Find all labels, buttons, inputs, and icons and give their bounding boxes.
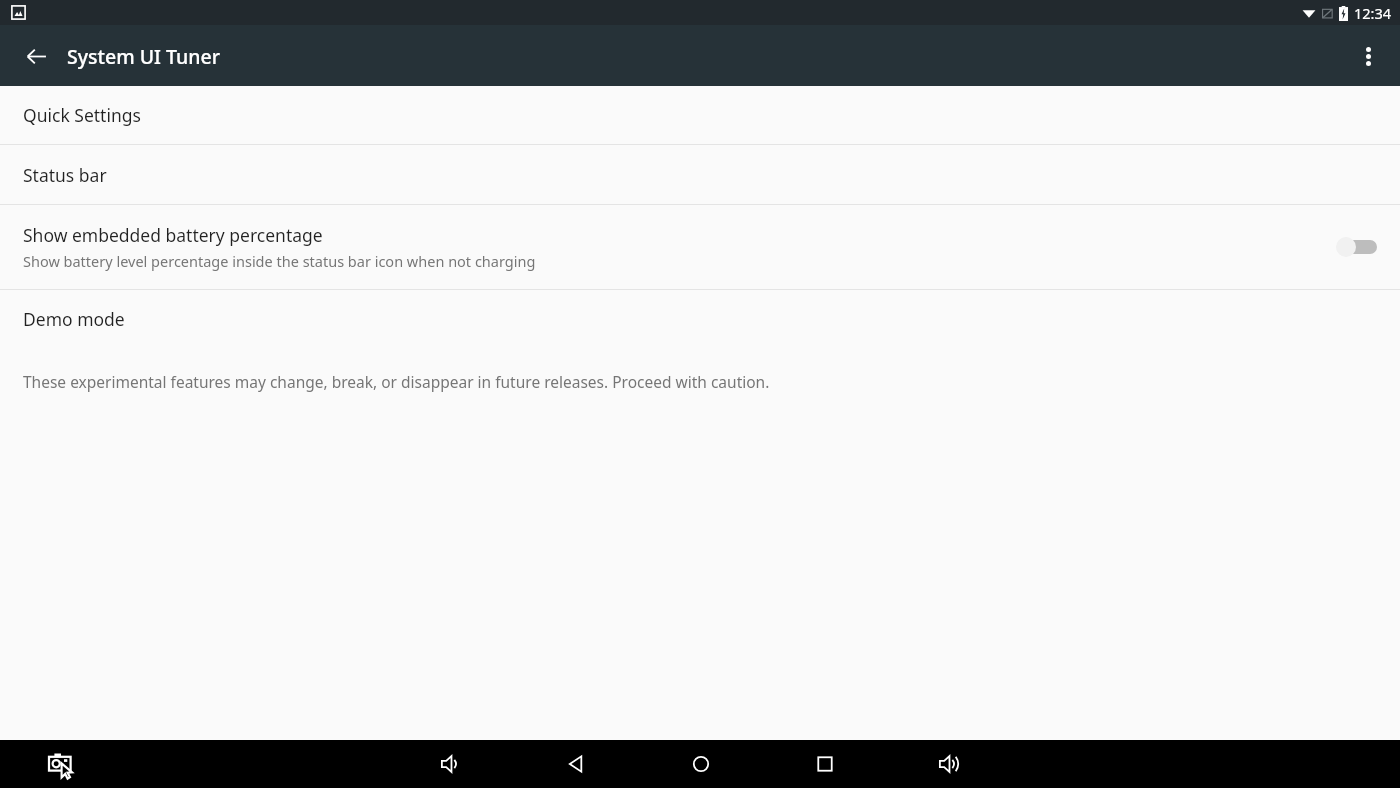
staticText: 12:34 xyxy=(1354,3,1392,23)
button[interactable]: Show embedded battery percentage xyxy=(0,205,1400,289)
button[interactable]: Demo mode xyxy=(0,290,1400,348)
button[interactable]: Volume up xyxy=(928,743,970,785)
staticText: These experimental features may change, … xyxy=(23,371,770,392)
staticText: System UI Tuner xyxy=(67,43,220,70)
button[interactable]: Status bar xyxy=(0,145,1400,204)
staticText: Demo mode xyxy=(23,307,125,331)
button[interactable]: Quick Settings xyxy=(0,86,1400,144)
button[interactable]: More options xyxy=(1346,34,1390,78)
button[interactable]: Home xyxy=(680,743,722,785)
button[interactable]: Recent apps xyxy=(804,743,846,785)
button[interactable]: Back xyxy=(556,743,598,785)
staticText: Quick Settings xyxy=(23,103,141,127)
button[interactable]: Volume down xyxy=(430,743,472,785)
staticText: Show battery level percentage inside the… xyxy=(23,251,536,271)
staticText: Status bar xyxy=(23,163,107,187)
button[interactable]: Screenshot xyxy=(44,747,78,781)
button[interactable]: Back xyxy=(18,38,54,74)
staticText: Show embedded battery percentage xyxy=(23,223,323,247)
